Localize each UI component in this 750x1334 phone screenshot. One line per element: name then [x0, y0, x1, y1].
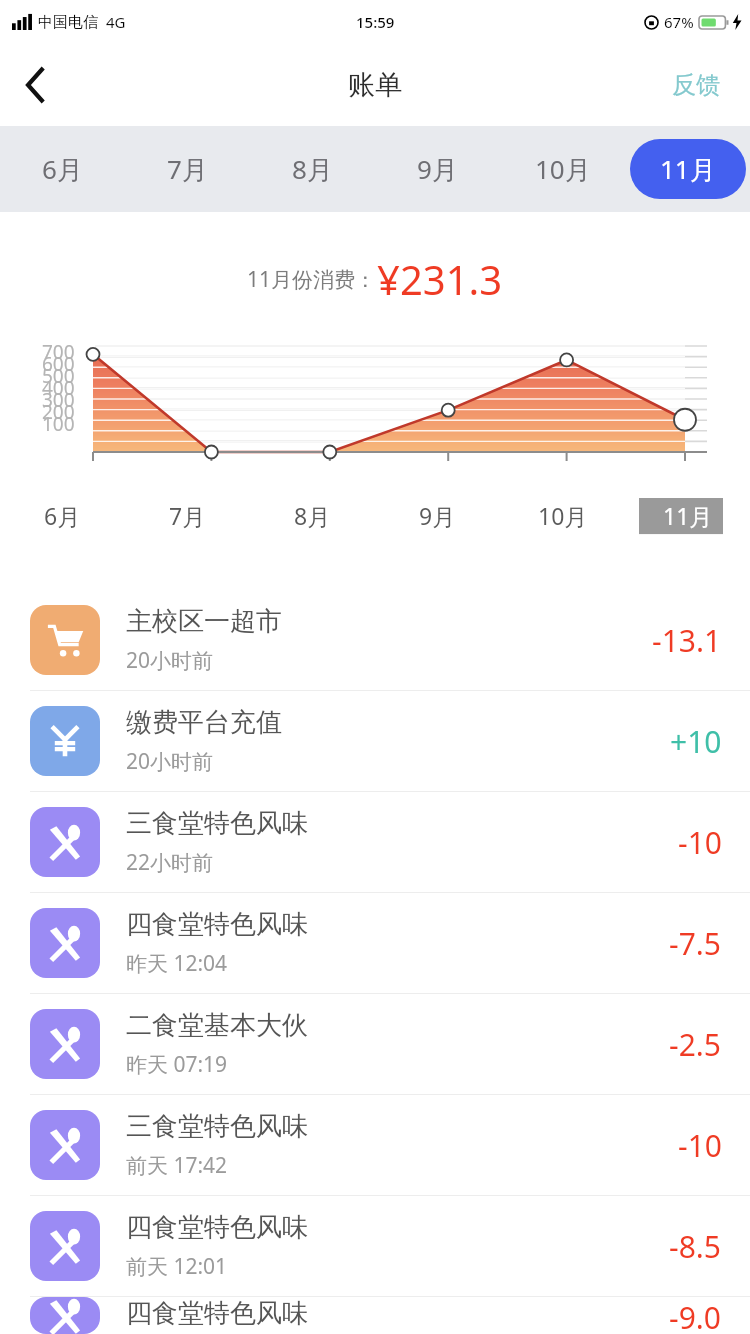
staticText: 10月: [538, 500, 588, 531]
staticText: -10: [678, 1125, 722, 1166]
staticText: 四食堂特色风味: [126, 908, 308, 941]
button[interactable]: 6月: [0, 126, 125, 212]
button[interactable]: 10月: [500, 126, 625, 212]
staticText: 账单: [348, 68, 402, 102]
staticText: 700: [42, 339, 75, 365]
staticText: 6月: [44, 500, 81, 531]
button[interactable]: 四食堂特色风味: [0, 1297, 750, 1334]
staticText: 67%: [664, 12, 694, 32]
button[interactable]: Back: [8, 57, 64, 113]
button[interactable]: 三食堂特色风味: [0, 1095, 750, 1196]
staticText: ¥231.3: [377, 252, 503, 306]
staticText: 20小时前: [126, 747, 214, 776]
staticText: 11月: [660, 151, 716, 187]
button[interactable]: 8月: [250, 126, 375, 212]
staticText: -2.5: [669, 1024, 722, 1065]
staticText: 20小时前: [126, 646, 214, 675]
staticText: 反馈: [672, 70, 720, 100]
staticText: 15:59: [356, 12, 395, 32]
staticText: 400: [42, 375, 75, 401]
button[interactable]: 9月: [375, 126, 500, 212]
staticText: 10月: [535, 151, 591, 187]
staticText: 前天 17:42: [126, 1151, 228, 1180]
staticText: 500: [42, 363, 75, 389]
staticText: 三食堂特色风味: [126, 1110, 308, 1143]
staticText: 前天 12:01: [126, 1252, 228, 1281]
staticText: 600: [42, 351, 75, 377]
button[interactable]: 7月: [125, 126, 250, 212]
staticText: 300: [42, 387, 75, 413]
staticText: 昨天 07:19: [126, 1050, 228, 1079]
staticText: -7.5: [669, 923, 722, 964]
staticText: -8.5: [669, 1226, 722, 1267]
staticText: 9月: [417, 151, 458, 187]
staticText: 缴费平台充值: [126, 706, 282, 739]
button[interactable]: 三食堂特色风味: [0, 792, 750, 893]
staticText: 100: [42, 411, 75, 437]
button[interactable]: 11月: [625, 126, 750, 212]
staticText: 三食堂特色风味: [126, 807, 308, 840]
staticText: +10: [670, 721, 722, 762]
staticText: 8月: [292, 151, 333, 187]
staticText: -9.0: [669, 1297, 722, 1334]
staticText: 9月: [419, 500, 456, 531]
button[interactable]: 四食堂特色风味: [0, 1196, 750, 1297]
staticText: 中国电信: [38, 13, 98, 32]
staticText: 主校区一超市: [126, 605, 282, 638]
button[interactable]: 二食堂基本大伙: [0, 994, 750, 1095]
button[interactable]: 四食堂特色风味: [0, 893, 750, 994]
staticText: 昨天 12:04: [126, 949, 228, 978]
staticText: 7月: [167, 151, 208, 187]
button[interactable]: 缴费平台充值: [0, 691, 750, 792]
staticText: 200: [42, 399, 75, 425]
staticText: 四食堂特色风味: [126, 1211, 308, 1244]
staticText: 7月: [169, 500, 206, 531]
staticText: 二食堂基本大伙: [126, 1009, 308, 1042]
staticText: -10: [678, 822, 722, 863]
staticText: -13.1: [652, 620, 722, 661]
staticText: 22小时前: [126, 848, 214, 877]
button[interactable]: 反馈: [664, 62, 728, 108]
staticText: 11月: [663, 500, 713, 531]
staticText: 8月: [294, 500, 331, 531]
staticText: 四食堂特色风味: [126, 1297, 308, 1330]
button[interactable]: 主校区一超市: [0, 590, 750, 691]
staticText: 11月份消费：: [247, 265, 377, 294]
staticText: 6月: [42, 151, 83, 187]
staticText: 4G: [106, 12, 126, 32]
